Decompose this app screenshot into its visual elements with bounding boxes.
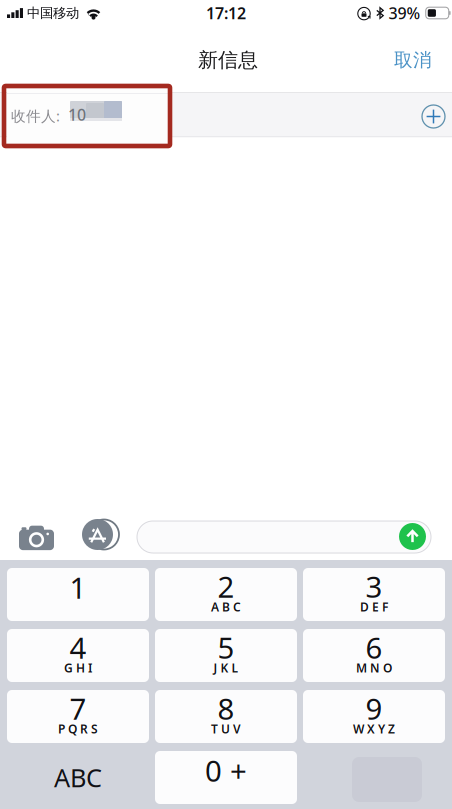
button[interactable]: 8	[155, 690, 297, 743]
staticText: A B C	[211, 599, 241, 615]
staticText: 取消	[394, 48, 432, 71]
button[interactable]: 9	[303, 690, 445, 743]
button[interactable]: ABC	[7, 751, 149, 804]
staticText: 8	[217, 689, 234, 728]
staticText: ABC	[54, 761, 102, 794]
staticText: D E F	[360, 599, 388, 615]
staticText: 2	[217, 567, 234, 606]
button[interactable]: Send	[399, 523, 426, 550]
staticText: 39%	[388, 2, 420, 24]
button[interactable]: 0 +	[155, 751, 297, 804]
staticText: 17:12	[206, 2, 246, 24]
button[interactable]: 4	[7, 629, 149, 682]
staticText: 1	[69, 568, 86, 607]
staticText: W X Y Z	[353, 721, 395, 737]
button[interactable]: 1	[7, 568, 149, 621]
button[interactable]: 7	[7, 690, 149, 743]
staticText: M N O	[356, 660, 392, 676]
staticText: 3	[365, 567, 382, 606]
staticText: 新信息	[198, 48, 258, 72]
button[interactable]: 取消	[374, 35, 452, 84]
staticText: T U V	[211, 721, 241, 737]
staticText: 6	[365, 628, 382, 667]
staticText: 中国移动	[27, 5, 79, 21]
button[interactable]: 3	[303, 568, 445, 621]
staticText: G H I	[64, 660, 92, 676]
staticText: 4	[69, 628, 86, 667]
staticText: J K L	[213, 660, 238, 676]
button[interactable]: 2	[155, 568, 297, 621]
staticText: 收件人:	[11, 106, 60, 125]
staticText: 10	[68, 104, 86, 125]
button[interactable]: Add recipient	[412, 95, 452, 138]
button[interactable]: 6	[303, 629, 445, 682]
staticText: 7	[69, 689, 86, 728]
staticText: 9	[365, 689, 382, 728]
staticText: P Q R S	[58, 721, 98, 737]
button[interactable]: Camera	[19, 523, 54, 548]
button[interactable]: Apps	[79, 519, 116, 550]
staticText: 0 +	[205, 751, 247, 790]
button[interactable]: 5	[155, 629, 297, 682]
staticText: 5	[217, 628, 234, 667]
